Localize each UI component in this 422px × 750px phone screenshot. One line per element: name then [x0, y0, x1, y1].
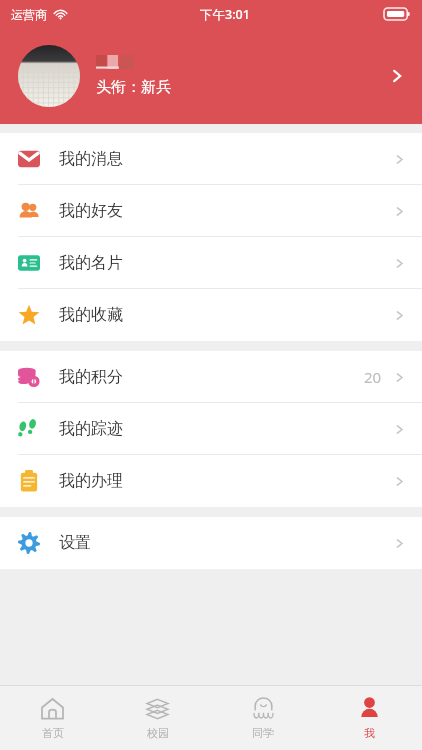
staticText: 我的积分	[59, 367, 123, 387]
button[interactable]: 我的办理	[0, 455, 422, 507]
staticText: 校园	[147, 726, 169, 740]
button[interactable]: 我的消息	[0, 133, 422, 185]
staticText: 我的收藏	[59, 305, 123, 325]
staticText: 头衔：新兵	[96, 78, 171, 97]
button[interactable]: 同学	[210, 686, 316, 750]
staticText: 设置	[59, 533, 91, 553]
staticText: 我的消息	[59, 149, 123, 169]
staticText: 运营商	[11, 7, 47, 22]
staticText: 我	[364, 726, 375, 740]
button[interactable]: 首页	[0, 686, 105, 750]
staticText: 同学	[252, 726, 274, 740]
button[interactable]: 我的好友	[0, 185, 422, 237]
staticText: 我的名片	[59, 253, 123, 273]
button[interactable]: 校园	[105, 686, 210, 750]
button[interactable]: 我的踪迹	[0, 403, 422, 455]
button[interactable]: 设置	[0, 517, 422, 569]
other: 查看个人资料	[387, 66, 407, 86]
button[interactable]: 我的名片	[0, 237, 422, 289]
staticText: 首页	[42, 726, 64, 740]
button[interactable]: 我	[316, 686, 422, 750]
staticText: 我的办理	[59, 471, 123, 491]
staticText: 我的踪迹	[59, 419, 123, 439]
staticText: 20	[364, 367, 382, 387]
staticText: 我的好友	[59, 201, 123, 221]
button[interactable]: 我的收藏	[0, 289, 422, 341]
staticText: 下午3:01	[200, 6, 250, 23]
button[interactable]: 头衔：新兵	[0, 28, 422, 124]
button[interactable]: 我的积分	[0, 351, 422, 403]
